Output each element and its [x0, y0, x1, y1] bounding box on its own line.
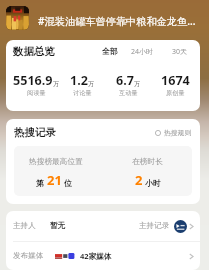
staticText: 原创量	[166, 89, 185, 97]
staticText: 发布媒体	[13, 251, 44, 261]
button[interactable]: 全部	[102, 47, 118, 57]
staticText: 主持人	[13, 221, 36, 231]
staticText: 1.2	[70, 72, 88, 89]
staticText: 6.7	[116, 72, 134, 89]
button[interactable]: 发布媒体	[6, 242, 200, 270]
button[interactable]: 主持人	[6, 211, 200, 241]
staticText: 24小时	[131, 47, 154, 57]
staticText: 暂无	[50, 221, 66, 231]
staticText: 小时	[145, 178, 161, 188]
staticText: 2	[135, 171, 143, 189]
staticText: 热搜记录	[14, 126, 56, 139]
staticText: 21	[47, 171, 62, 189]
button[interactable]: 30天	[172, 47, 188, 57]
button[interactable]: Topic cover	[6, 6, 29, 30]
staticText: 42家媒体	[80, 251, 112, 261]
staticText: 全部	[102, 47, 118, 57]
staticText: 5516.9	[13, 72, 53, 89]
staticText: 互动量	[119, 89, 138, 97]
staticText: 万	[53, 80, 59, 88]
staticText: 第	[36, 178, 44, 188]
staticText: 万	[88, 80, 95, 88]
staticText: 在榜时长	[132, 157, 163, 167]
staticText: 热搜规则	[164, 128, 192, 137]
staticText: 讨论量	[73, 89, 92, 97]
staticText: 数据总览	[13, 45, 55, 58]
staticText: 主持记录	[139, 221, 170, 231]
staticText: 位	[64, 178, 72, 188]
staticText: 万	[134, 80, 141, 88]
staticText: 热搜榜最高位置	[29, 157, 83, 167]
staticText: #混装油罐车曾停靠中粮和金龙鱼…	[38, 14, 201, 28]
button[interactable]: 热搜规则	[155, 128, 192, 137]
button[interactable]: 24小时	[131, 47, 154, 57]
staticText: 1674	[161, 72, 190, 89]
staticText: 30天	[172, 47, 188, 57]
staticText: 阅读量	[27, 89, 46, 97]
